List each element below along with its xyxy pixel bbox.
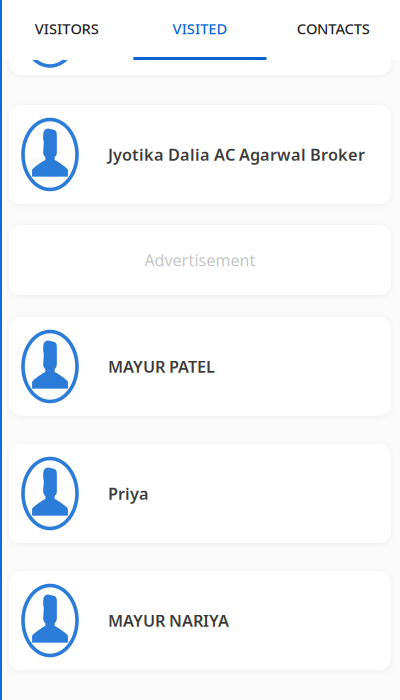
button[interactable]: CONTACTS: [267, 0, 400, 57]
button[interactable]: Jyotika Dalia AC Agarwal Broker: [9, 105, 391, 204]
button[interactable]: VISITORS: [0, 0, 133, 57]
button[interactable]: MAYUR NARIYA: [9, 571, 391, 670]
staticText: Kiran Shah: [108, 20, 194, 42]
button[interactable]: VISITED: [133, 0, 267, 57]
staticText: MAYUR PATEL: [108, 355, 215, 378]
button[interactable]: Advertisement: [9, 225, 391, 295]
staticText: Advertisement: [144, 249, 255, 271]
staticText: Priya: [108, 482, 149, 505]
button[interactable]: Priya: [9, 444, 391, 543]
staticText: MAYUR NARIYA: [108, 609, 229, 632]
button[interactable]: MAYUR PATEL: [9, 317, 391, 416]
staticText: VISITORS: [35, 19, 99, 38]
staticText: CONTACTS: [297, 19, 370, 38]
staticText: Jyotika Dalia AC Agarwal Broker: [108, 143, 365, 166]
staticText: VISITED: [172, 19, 227, 38]
button[interactable]: Kiran Shah: [9, 0, 391, 75]
